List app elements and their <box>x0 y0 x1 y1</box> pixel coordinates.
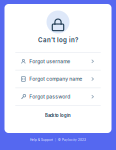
staticText: Forgot password <box>29 94 70 100</box>
button[interactable]: Back to login <box>37 109 79 122</box>
staticText: © Paylocity 2023 <box>58 138 86 142</box>
button[interactable]: Forgot username <box>4 53 111 70</box>
button[interactable]: Forgot password <box>4 88 111 105</box>
staticText: Help & Support <box>30 138 53 142</box>
staticText: Back to login <box>45 113 71 118</box>
staticText: Can't log in? <box>38 36 78 44</box>
staticText: | <box>55 138 56 142</box>
button[interactable]: Help & Support <box>30 138 53 142</box>
staticText: Forgot username <box>29 58 70 64</box>
button[interactable]: Forgot company name <box>4 70 111 87</box>
staticText: Forgot company name <box>29 76 82 82</box>
